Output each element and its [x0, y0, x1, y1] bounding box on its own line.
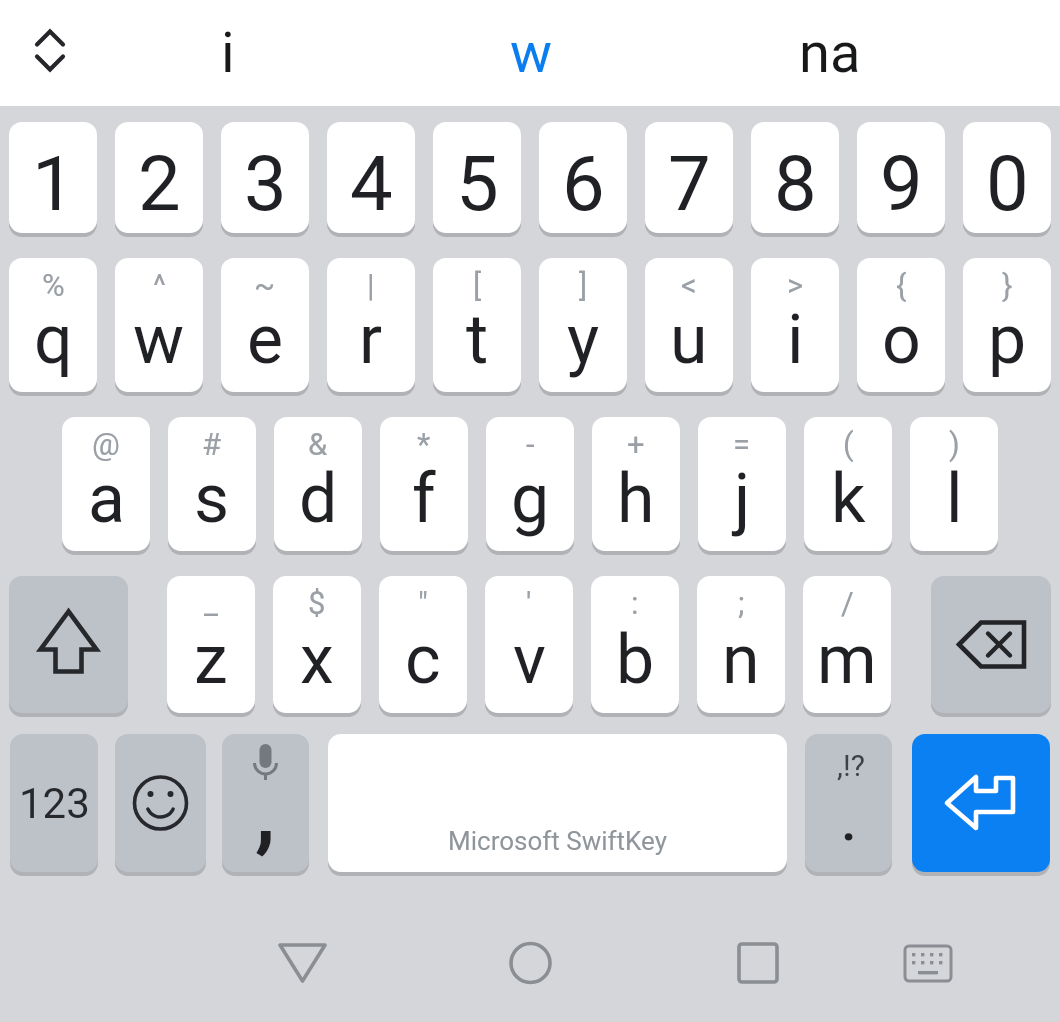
button[interactable] — [931, 576, 1051, 713]
button[interactable]: x — [273, 576, 361, 713]
button[interactable]: m — [803, 576, 891, 713]
staticText: > — [787, 267, 804, 303]
button[interactable]: , — [222, 734, 309, 872]
staticText: g — [511, 459, 550, 539]
staticText: h — [617, 459, 655, 539]
button[interactable]: na — [730, 0, 930, 106]
staticText: < — [681, 267, 697, 303]
staticText: [ — [473, 267, 482, 303]
button[interactable]: l — [910, 417, 998, 551]
staticText: & — [308, 426, 328, 462]
button[interactable]: v — [485, 576, 573, 713]
button[interactable]: p — [963, 258, 1051, 392]
button[interactable]: 3 — [221, 122, 309, 233]
button[interactable]: k — [804, 417, 892, 551]
staticText: w — [133, 300, 185, 380]
staticText: p — [988, 300, 1027, 380]
staticText: # — [202, 426, 222, 462]
button[interactable]: w — [431, 0, 631, 106]
button[interactable]: i — [751, 258, 839, 392]
staticText: b — [616, 620, 655, 700]
button[interactable] — [14, 13, 88, 87]
button[interactable] — [270, 930, 335, 995]
button[interactable]: 7 — [645, 122, 733, 233]
button[interactable]: r — [327, 258, 415, 392]
button[interactable]: Microsoft SwiftKey — [328, 734, 787, 872]
staticText: u — [670, 300, 708, 380]
button[interactable]: h — [592, 417, 680, 551]
staticText: i — [221, 20, 235, 86]
staticText: 6 — [562, 139, 605, 228]
button[interactable]: j — [698, 417, 786, 551]
button[interactable]: n — [697, 576, 785, 713]
button[interactable] — [115, 734, 206, 872]
button[interactable]: u — [645, 258, 733, 392]
staticText: 1 — [32, 139, 75, 228]
button[interactable]: e — [221, 258, 309, 392]
button[interactable]: f — [380, 417, 468, 551]
staticText: : — [631, 585, 639, 621]
staticText: . — [841, 788, 857, 854]
staticText: _ — [204, 585, 218, 621]
button[interactable]: 9 — [857, 122, 945, 233]
button[interactable]: d — [274, 417, 362, 551]
button[interactable]: i — [128, 0, 328, 106]
staticText: l — [946, 459, 963, 539]
staticText: n — [722, 620, 760, 700]
staticText: 2 — [138, 139, 181, 228]
staticText: 5 — [456, 139, 499, 228]
button[interactable]: z — [167, 576, 255, 713]
button[interactable]: y — [539, 258, 627, 392]
staticText: a — [88, 459, 125, 539]
button[interactable] — [725, 930, 790, 995]
button[interactable]: 5 — [433, 122, 521, 233]
staticText: i — [787, 300, 804, 380]
staticText: j — [734, 459, 751, 539]
staticText: w — [510, 20, 553, 86]
staticText: } — [1002, 267, 1013, 303]
staticText: , — [255, 757, 276, 865]
staticText: d — [299, 459, 338, 539]
staticText: = — [733, 426, 751, 462]
staticText: ) — [949, 426, 960, 462]
button[interactable]: g — [486, 417, 574, 551]
button[interactable]: 123 — [10, 734, 98, 872]
staticText: ' — [526, 585, 532, 621]
staticText: 123 — [19, 779, 90, 828]
button[interactable]: t — [433, 258, 521, 392]
button[interactable]: 8 — [751, 122, 839, 233]
staticText: ~ — [254, 267, 276, 303]
staticText: 3 — [244, 139, 287, 228]
staticText: c — [405, 620, 441, 700]
button[interactable]: 2 — [115, 122, 203, 233]
button[interactable]: 1 — [9, 122, 97, 233]
button[interactable]: w — [115, 258, 203, 392]
staticText: m — [817, 620, 877, 700]
staticText: | — [367, 267, 375, 303]
staticText: t — [466, 300, 489, 380]
staticText: v — [513, 620, 546, 700]
staticText: y — [567, 300, 600, 380]
button[interactable] — [912, 734, 1050, 872]
button[interactable]: s — [168, 417, 256, 551]
button[interactable]: c — [379, 576, 467, 713]
staticText: % — [42, 267, 65, 303]
button[interactable] — [9, 576, 128, 713]
staticText: 0 — [986, 139, 1029, 228]
button[interactable] — [498, 930, 563, 995]
button[interactable]: ,!? — [805, 734, 892, 872]
button[interactable]: 4 — [327, 122, 415, 233]
staticText: ( — [843, 426, 854, 462]
button[interactable]: o — [857, 258, 945, 392]
staticText: ; — [738, 585, 745, 621]
button[interactable]: a — [62, 417, 150, 551]
staticText: * — [417, 426, 431, 462]
staticText: e — [247, 300, 284, 380]
staticText: - — [526, 426, 535, 462]
button[interactable]: 0 — [963, 122, 1051, 233]
button[interactable]: b — [591, 576, 679, 713]
button[interactable]: q — [9, 258, 97, 392]
staticText: Microsoft SwiftKey — [448, 826, 668, 856]
button[interactable]: 6 — [539, 122, 627, 233]
button[interactable] — [895, 930, 961, 995]
